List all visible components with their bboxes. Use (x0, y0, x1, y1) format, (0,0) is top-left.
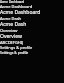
staticText: Settings & profile (0, 45, 33, 50)
staticText: Acme Dash (0, 16, 22, 21)
staticText: Overview (0, 28, 18, 33)
staticText: ABCDEFGHIJ (0, 40, 24, 45)
staticText: Acme Dashboard (0, 0, 25, 4)
staticText: Overview (0, 33, 22, 40)
staticText: Acme Dashboard (0, 4, 33, 9)
staticText: Acme Dash (0, 21, 27, 28)
staticText: Settings & profile (0, 50, 29, 55)
staticText: Acme Dashboard (0, 9, 41, 16)
